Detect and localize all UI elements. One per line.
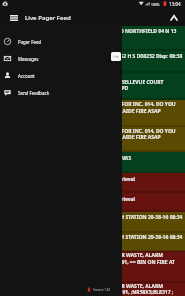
staticText: STRUCTURE RUBBISH OR WASTE, ALARM [64,283,163,290]
staticText: WANT SOUTH ADELAIDE FIRE ASAP [75,108,161,115]
button[interactable] [0,232,185,252]
button[interactable] [0,173,185,194]
staticText: fireserv 1.82 [93,288,111,292]
staticText: ALARM ACTIVATION FIRE C20 NORTHFIELD 94 … [52,28,177,35]
button[interactable] [0,100,185,127]
staticText: RESPOND SOUTH STATION 29-38-16 08:34 [82,214,183,221]
staticText: SOUTH OPD [99,85,129,92]
staticText: Account [18,73,35,79]
button[interactable]: Open navigation drawer [7,11,20,24]
staticText: DISTRICT191, == BIN ON FIRE AT [96,259,175,266]
button[interactable] [0,152,185,174]
button[interactable] [0,212,185,234]
button[interactable] [0,193,185,213]
button[interactable] [0,51,185,74]
staticText: Rescue water retrieval [79,196,136,203]
button[interactable]: Messages [0,50,122,67]
button[interactable] [0,26,185,52]
staticText: Pager Feed [18,39,42,45]
button[interactable] [0,126,185,152]
staticText: RESPONSE RECEIVED THANKS [59,155,132,162]
staticText: AUTOMATIC FIRE ALARM ACTIVATION - BELLEV… [24,79,164,86]
staticText: RESPOND SOUTH STATION 29-38-16 08:34 [82,234,183,241]
staticText: Send Feedback [18,90,49,96]
button[interactable] [0,73,185,102]
button[interactable]: Account [0,67,122,84]
button[interactable] [0,251,185,283]
staticText: RESPONDING PUMP S2 H S D08232 Disp: 08:3… [70,53,183,60]
staticText: Messages [18,56,39,62]
button[interactable] [0,282,185,296]
staticText: STRUCTURE RUBBISH OR WASTE, ALARM [64,252,163,259]
button[interactable]: Pager Feed [0,33,122,50]
staticText: 13:04 [169,1,181,7]
staticText: WANT SOUTH ADELAIDE FIRE ASAP [75,134,161,141]
staticText: 100% [151,2,160,6]
button[interactable]: Attachment preview [111,52,121,61]
staticText: Rescue water retrieval [79,176,136,183]
button[interactable]: Send Feedback [0,84,122,101]
staticText: ARE YOU RESPONDING FOR INC. 014. DO YOU [64,128,176,135]
button[interactable]: Collapse [167,11,180,24]
staticText: DISTRICT191, ;NR58X5;BL8317 ; [97,289,174,296]
staticText: ARE YOU RESPONDING FOR INC. 014. DO YOU [64,101,176,108]
staticText: Live Pager Feed [25,13,71,21]
